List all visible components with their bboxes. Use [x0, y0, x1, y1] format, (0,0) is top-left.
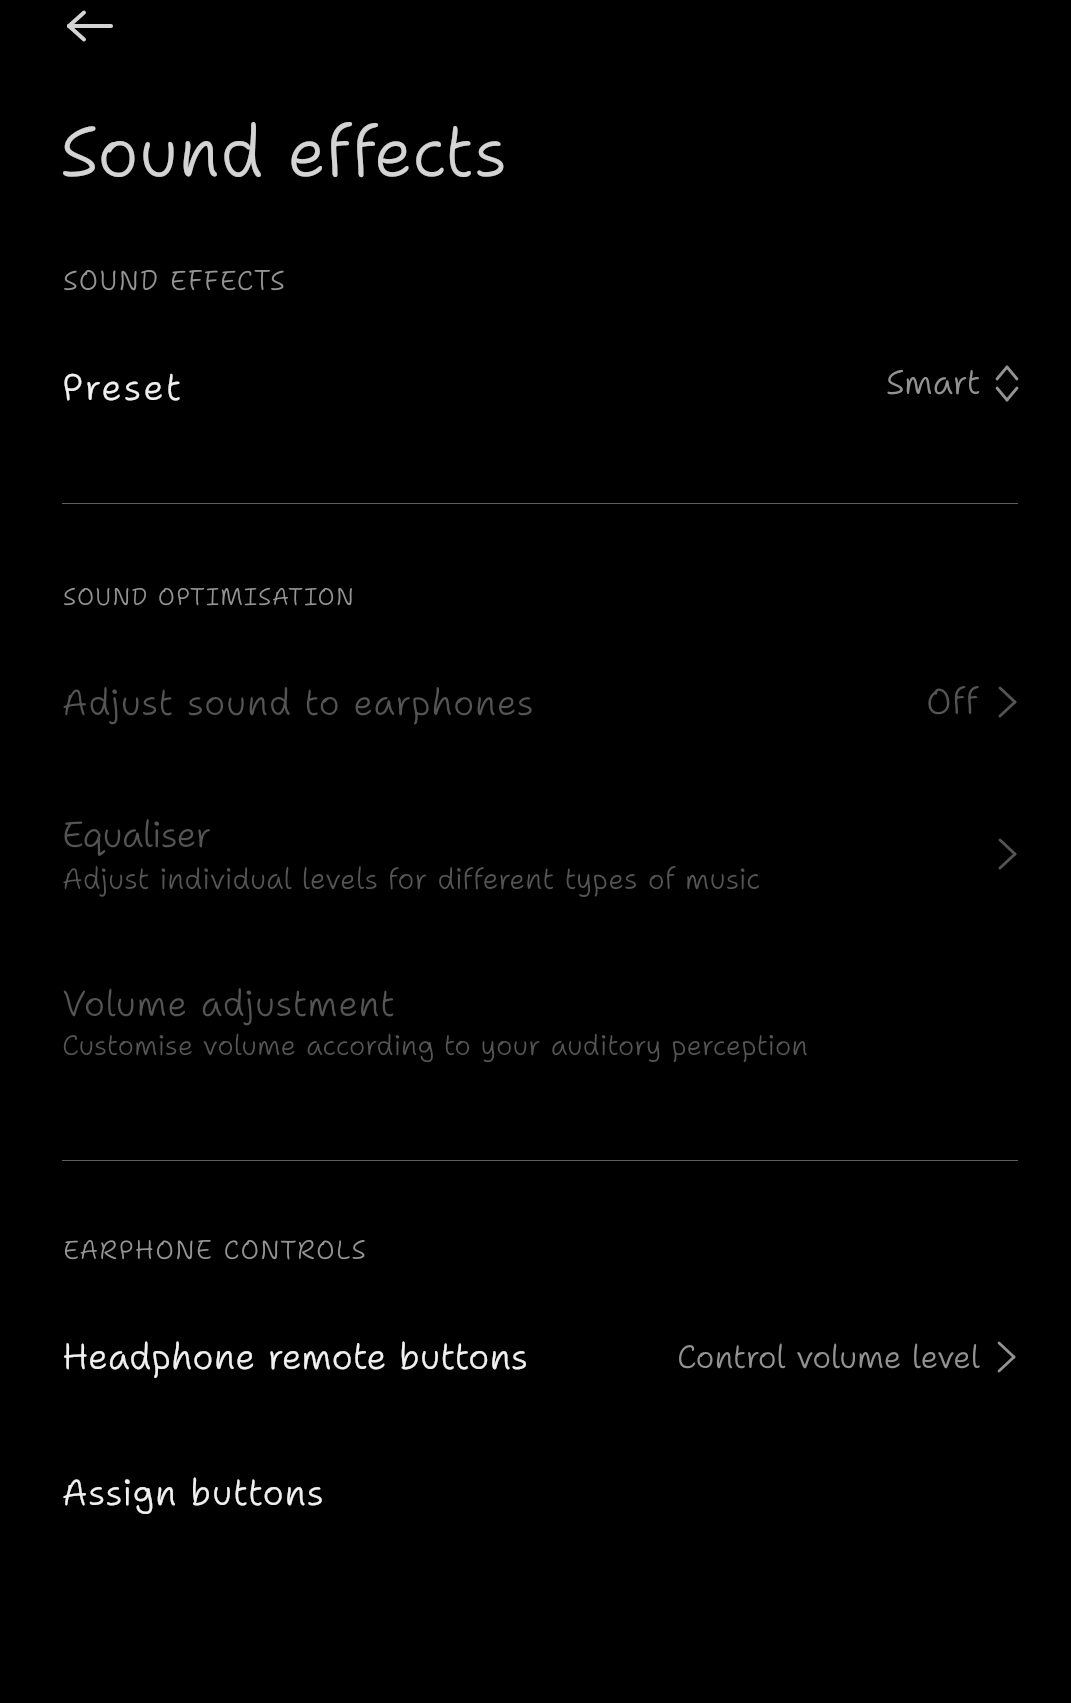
staticText: Equaliser — [62, 810, 211, 858]
staticText: Control volume level — [677, 1335, 980, 1378]
staticText: Adjust individual levels for different t… — [62, 859, 761, 898]
staticText: SOUND EFFECTS — [63, 262, 287, 298]
staticText: Adjust sound to earphones — [62, 678, 535, 726]
staticText: Headphone remote buttons — [62, 1332, 529, 1380]
staticText: Off — [926, 677, 979, 725]
staticText: Customise volume according to your audit… — [62, 1026, 809, 1064]
staticText: Sound effects — [60, 105, 508, 199]
button[interactable]: Volume adjustment — [0, 948, 1071, 1110]
staticText: SOUND OPTIMISATION — [63, 581, 356, 613]
button[interactable]: Assign buttons — [0, 1427, 1071, 1567]
button[interactable]: Equaliser — [0, 780, 1071, 940]
button[interactable]: Adjust sound to earphones — [0, 632, 1071, 772]
other: Change preset — [994, 364, 1020, 402]
staticText: Preset — [62, 362, 184, 412]
staticText: EARPHONE CONTROLS — [63, 1232, 368, 1267]
button[interactable]: Preset — [0, 318, 1071, 460]
staticText: Assign buttons — [62, 1468, 325, 1516]
staticText: Volume adjustment — [62, 979, 396, 1027]
staticText: Smart — [886, 359, 981, 405]
button[interactable]: Back — [40, 0, 140, 56]
button[interactable]: Headphone remote buttons — [0, 1287, 1071, 1427]
